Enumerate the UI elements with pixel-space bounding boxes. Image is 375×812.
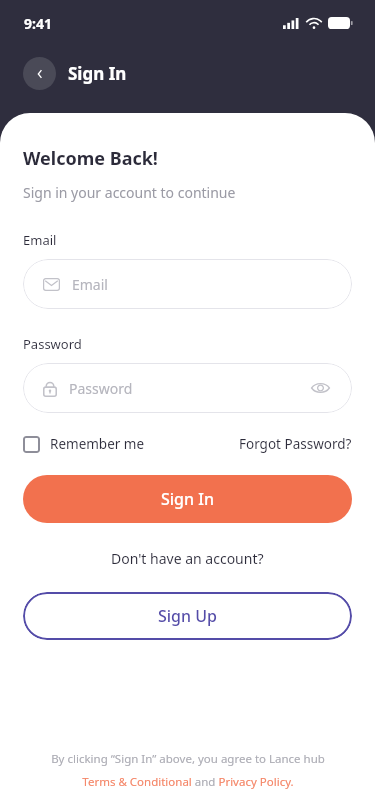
staticText: Welcome Back!: [23, 146, 158, 171]
button[interactable]: Email: [23, 259, 352, 309]
button[interactable]: Sign Up: [23, 592, 352, 640]
staticText: Forgot Password?: [239, 435, 352, 453]
button[interactable]: Show password: [308, 376, 332, 400]
staticText: Email: [72, 275, 108, 294]
staticText: Sign in your account to continue: [23, 183, 236, 202]
button[interactable]: Password: [23, 363, 352, 413]
button[interactable]: Forgot Password?: [239, 435, 352, 453]
staticText: By clicking “Sign In” above, you agree t…: [51, 751, 325, 767]
staticText: Password: [69, 379, 133, 398]
staticText: Remember me: [50, 435, 145, 453]
staticText: Don't have an account?: [111, 549, 264, 568]
staticText: Sign In: [68, 62, 127, 85]
staticText: Sign Up: [158, 605, 217, 627]
staticText: Email: [23, 231, 57, 249]
staticText: Password: [23, 335, 82, 353]
staticText: 9:41: [24, 14, 52, 33]
button[interactable]: Remember me: [23, 435, 145, 453]
button[interactable]: Sign In: [23, 475, 352, 523]
staticText: Sign In: [161, 488, 214, 510]
button[interactable]: Back: [23, 57, 56, 90]
staticText: Terms & Conditional and Privacy Policy.: [82, 774, 294, 790]
